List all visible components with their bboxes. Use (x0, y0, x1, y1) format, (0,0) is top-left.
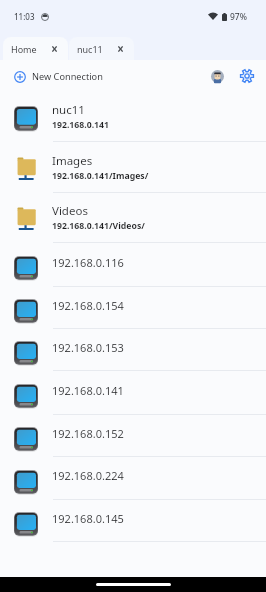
button[interactable]: 192.168.0.224 (0, 457, 266, 500)
staticText: 192.168.0.116 (52, 255, 124, 270)
button[interactable]: nuc11 (69, 37, 134, 60)
button[interactable]: 192.168.0.116 (0, 243, 266, 287)
button[interactable]: Close Home tab (48, 42, 61, 55)
staticText: 192.168.0.145 (52, 511, 124, 526)
button[interactable]: Videos (0, 193, 266, 243)
button[interactable]: Settings (234, 63, 260, 89)
staticText: 192.168.0.141/Images/ (52, 170, 149, 182)
staticText: Videos (52, 203, 88, 219)
staticText: 192.168.0.153 (52, 340, 124, 355)
button[interactable]: Account (206, 65, 228, 87)
staticText: New Connection (32, 70, 103, 83)
staticText: Home (11, 43, 37, 55)
button[interactable]: Images (0, 142, 266, 193)
button[interactable]: Close nuc11 tab (114, 42, 127, 55)
button[interactable]: 192.168.0.153 (0, 329, 266, 371)
staticText: 192.168.0.141/Videos/ (52, 220, 145, 232)
staticText: nuc11 (52, 102, 85, 118)
staticText: nuc11 (77, 43, 103, 55)
button[interactable]: New Connection (0, 66, 115, 87)
button[interactable]: nuc11 (0, 92, 266, 142)
staticText: Images (52, 153, 93, 169)
button[interactable]: Home (3, 37, 68, 60)
staticText: 192.168.0.154 (52, 298, 124, 313)
button[interactable]: 192.168.0.154 (0, 287, 266, 329)
staticText: 192.168.0.141 (52, 119, 110, 131)
staticText: 192.168.0.141 (52, 383, 124, 398)
staticText: 192.168.0.224 (52, 468, 124, 483)
staticText: 192.168.0.152 (52, 426, 124, 441)
staticText: 97% (230, 11, 247, 23)
button[interactable]: 192.168.0.152 (0, 415, 266, 457)
button[interactable]: 192.168.0.141 (0, 371, 266, 415)
staticText: 11:03 (14, 11, 35, 22)
button[interactable]: 192.168.0.145 (0, 500, 266, 542)
